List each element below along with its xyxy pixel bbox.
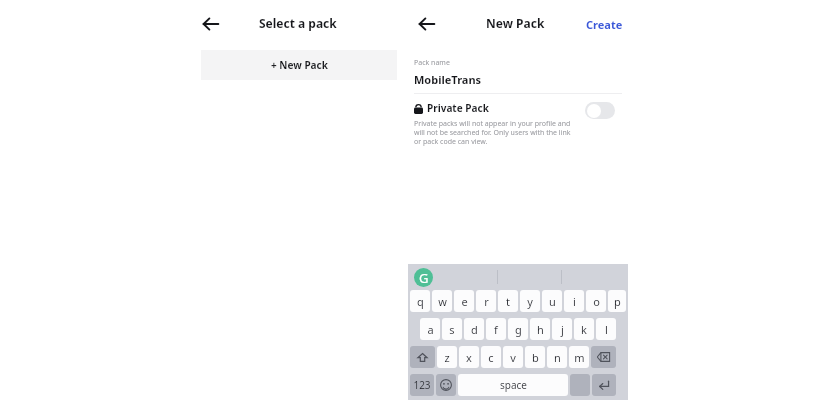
staticText: q xyxy=(417,294,424,309)
staticText: m xyxy=(574,350,585,365)
button[interactable]: Private Pack toggle xyxy=(585,102,615,119)
button[interactable]: Return xyxy=(592,374,616,396)
button[interactable]: a xyxy=(420,318,440,340)
staticText: n xyxy=(554,350,561,365)
staticText: Create xyxy=(586,17,623,32)
staticText: New Pack xyxy=(486,15,545,31)
staticText: e xyxy=(461,294,468,309)
button[interactable]: Shift xyxy=(410,346,435,368)
staticText: x xyxy=(466,350,472,365)
staticText: b xyxy=(532,350,539,365)
staticText: l xyxy=(605,322,608,337)
staticText: space xyxy=(500,378,527,392)
button[interactable]: u xyxy=(542,290,562,312)
button[interactable]: m xyxy=(569,346,589,368)
button[interactable]: Emoji xyxy=(436,374,456,396)
button[interactable]: Grammarly xyxy=(414,268,433,287)
button[interactable]: space xyxy=(458,374,568,396)
button[interactable]: v xyxy=(503,346,523,368)
button[interactable] xyxy=(570,374,590,396)
staticText: MobileTrans xyxy=(414,72,482,87)
button[interactable]: x xyxy=(459,346,479,368)
staticText: Pack name xyxy=(414,58,450,68)
button[interactable]: b xyxy=(525,346,545,368)
button[interactable]: w xyxy=(432,290,452,312)
button[interactable]: 123 xyxy=(410,374,434,396)
staticText: g xyxy=(515,322,522,337)
button[interactable]: o xyxy=(586,290,606,312)
button[interactable]: n xyxy=(547,346,567,368)
button[interactable]: k xyxy=(574,318,594,340)
button[interactable]: Back xyxy=(196,9,226,39)
staticText: Select a pack xyxy=(259,15,337,31)
staticText: 123 xyxy=(413,378,431,392)
staticText: o xyxy=(593,294,600,309)
button[interactable]: g xyxy=(508,318,528,340)
staticText: f xyxy=(494,322,498,337)
staticText: p xyxy=(614,294,621,309)
staticText: G xyxy=(419,269,429,287)
staticText: u xyxy=(549,294,556,309)
button[interactable]: j xyxy=(552,318,572,340)
staticText: k xyxy=(581,322,587,337)
button[interactable]: z xyxy=(437,346,457,368)
button[interactable]: s xyxy=(442,318,462,340)
button[interactable]: d xyxy=(464,318,484,340)
staticText: a xyxy=(427,322,434,337)
button[interactable]: Back xyxy=(412,9,442,39)
staticText: Private Pack xyxy=(427,101,489,115)
staticText: t xyxy=(506,294,510,309)
button[interactable]: c xyxy=(481,346,501,368)
button[interactable]: h xyxy=(530,318,550,340)
button[interactable]: r xyxy=(476,290,496,312)
staticText: y xyxy=(527,294,533,309)
staticText: r xyxy=(484,294,489,309)
button[interactable]: Create xyxy=(582,12,627,37)
staticText: i xyxy=(573,294,576,309)
button[interactable]: y xyxy=(520,290,540,312)
button[interactable]: t xyxy=(498,290,518,312)
staticText: j xyxy=(561,322,564,337)
staticText: + New Pack xyxy=(271,58,328,72)
button[interactable]: e xyxy=(454,290,474,312)
staticText: s xyxy=(449,322,455,337)
staticText: c xyxy=(488,350,494,365)
staticText: d xyxy=(471,322,478,337)
button[interactable]: i xyxy=(564,290,584,312)
staticText: Private packs will not appear in your pr… xyxy=(414,119,579,146)
staticText: v xyxy=(510,350,516,365)
button[interactable]: Backspace xyxy=(591,346,616,368)
staticText: h xyxy=(537,322,544,337)
staticText: z xyxy=(444,350,450,365)
button[interactable]: l xyxy=(596,318,616,340)
button[interactable]: f xyxy=(486,318,506,340)
button[interactable]: p xyxy=(608,290,626,312)
staticText: w xyxy=(438,294,447,309)
button[interactable]: q xyxy=(410,290,430,312)
button[interactable]: + New Pack xyxy=(201,50,397,80)
